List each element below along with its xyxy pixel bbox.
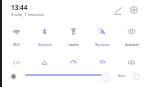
staticText: Środa, 7 kwietnia <box>11 12 44 18</box>
button[interactable]: Location <box>88 57 117 68</box>
button[interactable]: Wyciszanie <box>88 27 117 47</box>
staticText: Autoobrót <box>125 43 139 47</box>
staticText: Latarka <box>68 43 79 47</box>
staticText: Wyciszanie <box>95 43 110 47</box>
button[interactable]: Bluetooth <box>30 27 59 47</box>
button[interactable]: Auto brightness <box>134 74 139 79</box>
staticText: Bluetooth <box>38 43 52 47</box>
button[interactable]: Nearby share <box>2 57 30 68</box>
staticText: Wi-Fi <box>13 43 20 47</box>
staticText: Auto <box>118 73 126 78</box>
button[interactable]: Data saver <box>59 57 88 68</box>
button[interactable]: Latarka <box>59 27 88 47</box>
button[interactable]: Autoobrót <box>117 27 146 47</box>
button[interactable]: Edit <box>112 5 124 17</box>
button[interactable]: Wi-Fi <box>2 27 30 47</box>
button[interactable]: Cast <box>30 57 59 68</box>
button[interactable]: Screen record <box>117 57 146 68</box>
staticText: 13:44 <box>11 3 28 12</box>
button[interactable]: Brightness <box>10 73 17 80</box>
button[interactable]: Settings <box>128 4 140 16</box>
